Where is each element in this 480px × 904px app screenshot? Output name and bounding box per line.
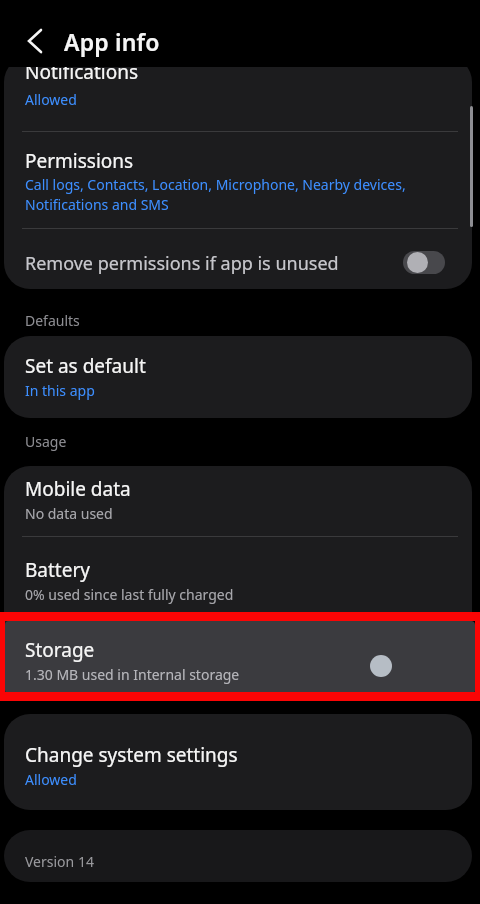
staticText: Allowed: [25, 90, 77, 109]
staticText: App info: [64, 26, 160, 57]
button[interactable]: [20, 24, 54, 58]
staticText: In this app: [25, 381, 95, 400]
button[interactable]: [4, 336, 472, 418]
button[interactable]: [4, 466, 472, 536]
staticText: Call logs, Contacts, Location, Microphon…: [25, 175, 406, 194]
button[interactable]: [5, 621, 475, 694]
button[interactable]: [4, 546, 472, 616]
staticText: Defaults: [25, 311, 80, 330]
staticText: 0% used since last fully charged: [25, 585, 234, 604]
staticText: Version 14: [25, 852, 94, 871]
button[interactable]: [4, 196, 472, 286]
staticText: No data used: [25, 504, 113, 523]
staticText: Battery: [25, 557, 90, 583]
staticText: 1.30 MB used in Internal storage: [25, 665, 240, 684]
staticText: Remove permissions if app is unused: [25, 251, 339, 276]
staticText: Set as default: [25, 353, 146, 379]
staticText: Usage: [25, 432, 67, 451]
button[interactable]: [4, 56, 472, 131]
button[interactable]: [403, 251, 445, 274]
staticText: Notifications: [25, 59, 139, 85]
staticText: Notifications and SMS: [25, 195, 169, 214]
button[interactable]: [4, 714, 472, 810]
staticText: Permissions: [25, 148, 134, 174]
staticText: Storage: [25, 637, 95, 663]
staticText: Allowed: [25, 770, 77, 789]
staticText: Change system settings: [25, 742, 238, 768]
staticText: Mobile data: [25, 476, 131, 502]
